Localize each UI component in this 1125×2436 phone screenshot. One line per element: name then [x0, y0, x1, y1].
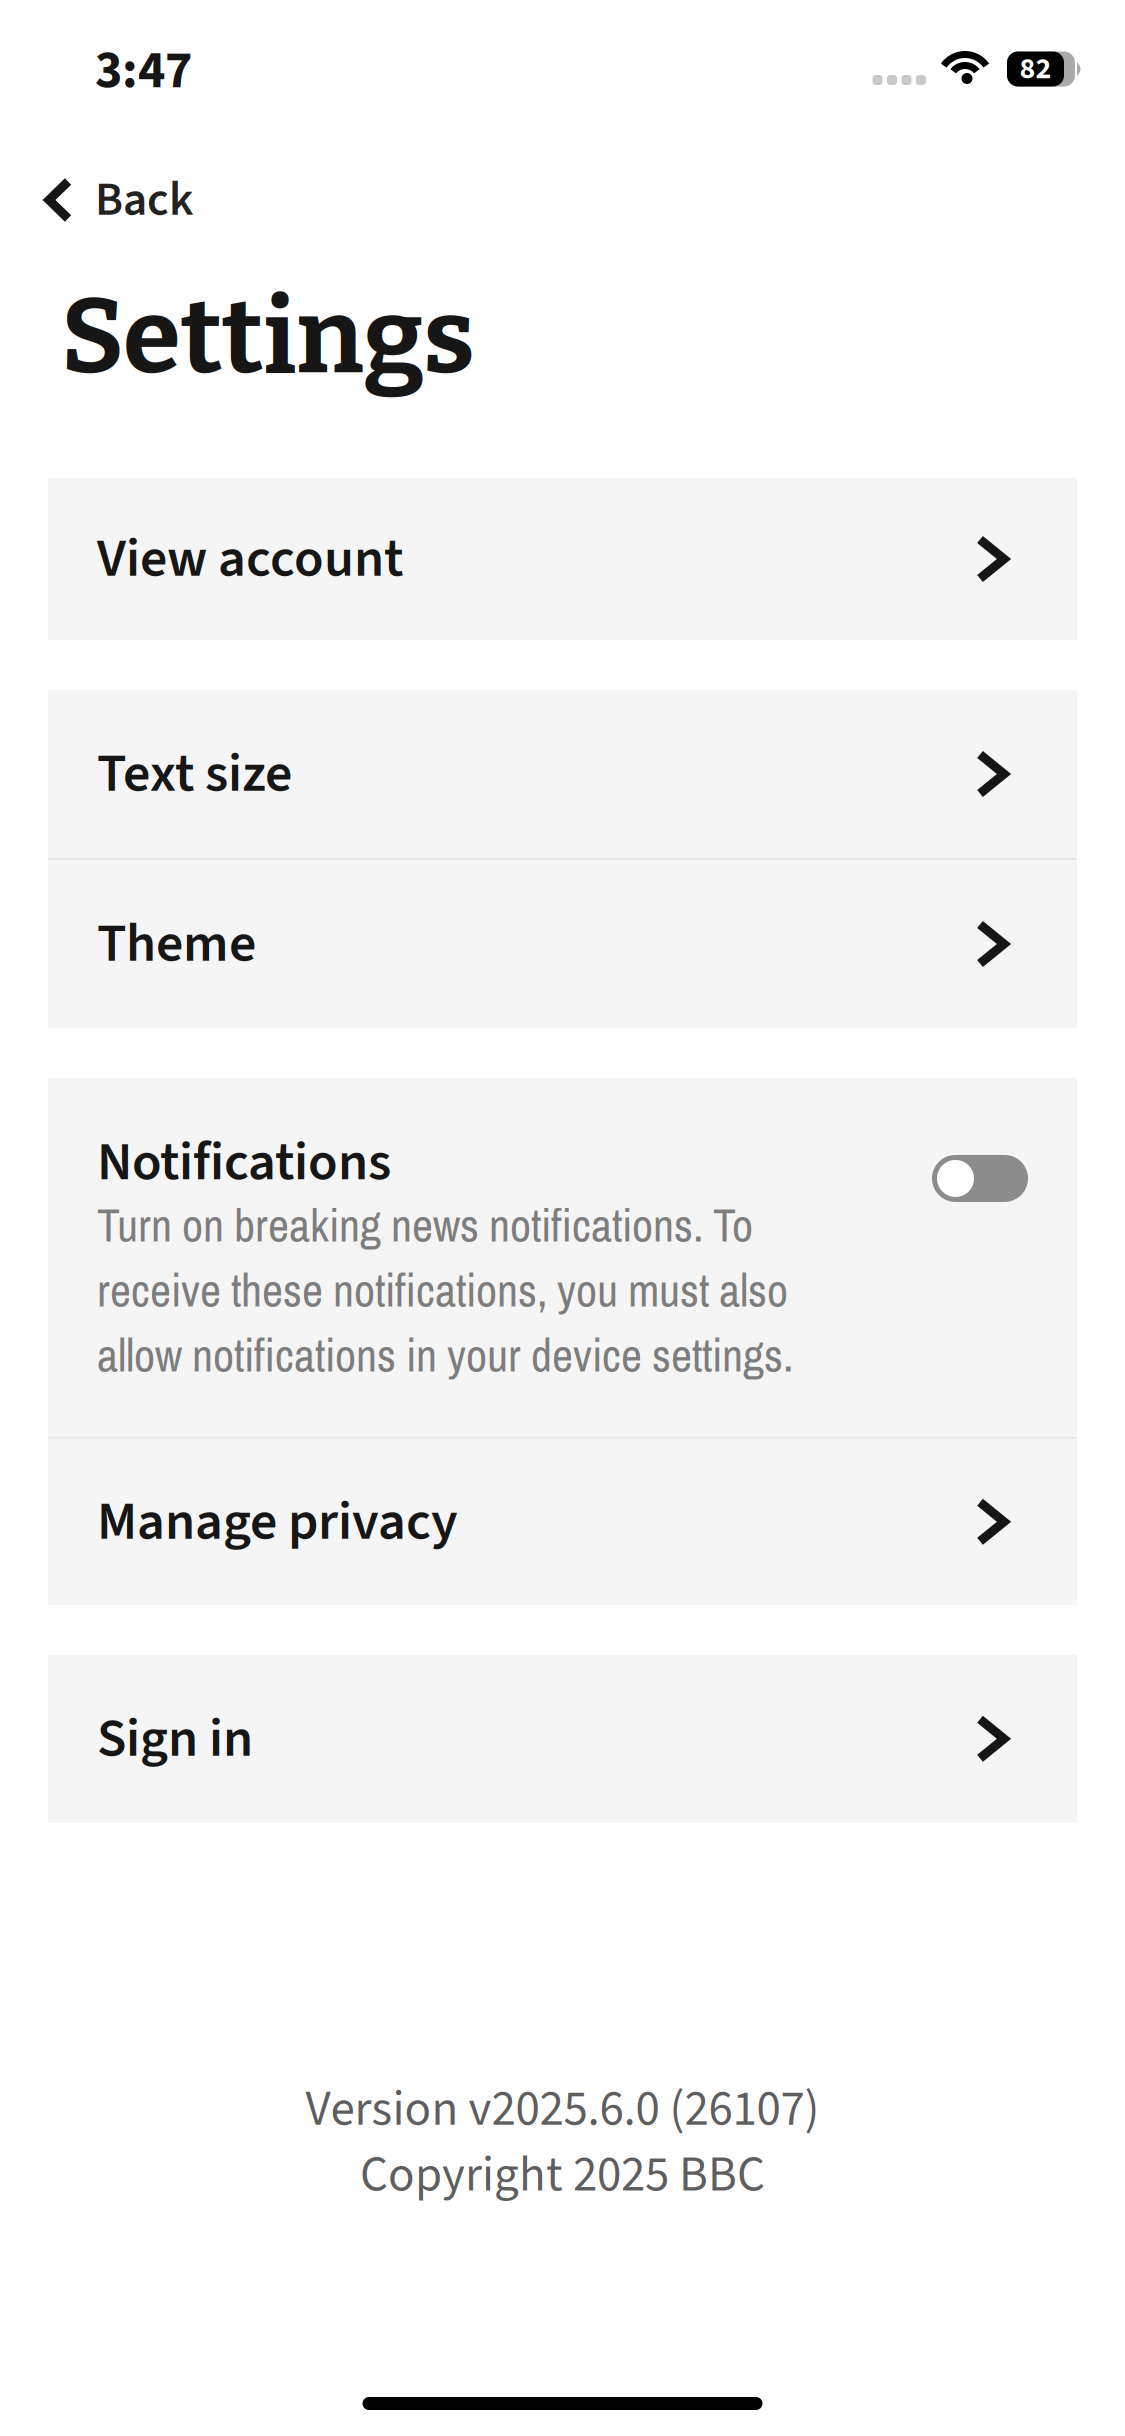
button[interactable]: Notifications	[932, 1155, 1028, 1202]
button[interactable]: View account	[48, 478, 1077, 640]
button[interactable]: Theme	[48, 860, 1077, 1028]
staticText: 82	[1019, 48, 1051, 90]
staticText: Manage privacy	[97, 1483, 458, 1560]
staticText: View account	[97, 521, 403, 597]
staticText: Sign in	[97, 1700, 253, 1777]
staticText: Turn on breaking news notifications. To …	[97, 1194, 793, 1386]
staticText: 3:47	[95, 34, 192, 108]
staticText: Settings	[61, 274, 475, 400]
staticText: Theme	[97, 906, 256, 982]
staticText: Version v2025.6.0 (26107)	[305, 2074, 819, 2144]
button[interactable]: Sign in	[48, 1655, 1077, 1823]
staticText: Text size	[97, 736, 292, 812]
button[interactable]: Manage privacy	[48, 1439, 1077, 1605]
staticText: Back	[95, 166, 194, 233]
button[interactable]: Back	[0, 134, 194, 266]
button[interactable]: Text size	[48, 690, 1077, 858]
staticText: Copyright 2025 BBC	[360, 2140, 765, 2210]
staticText: Notifications	[97, 1124, 391, 1201]
